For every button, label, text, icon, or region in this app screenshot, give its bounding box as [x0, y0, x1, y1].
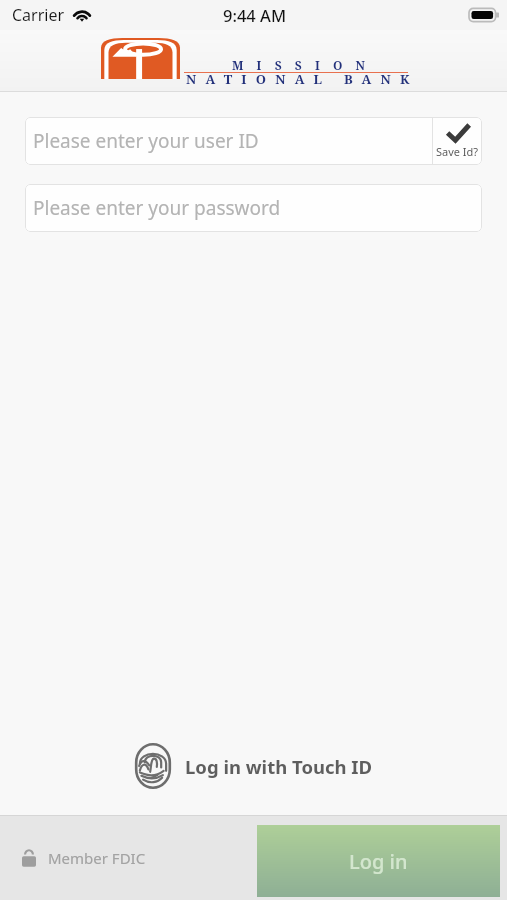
staticText: 9:44 AM	[223, 4, 287, 26]
staticText: Please enter your user ID	[33, 128, 259, 154]
button[interactable]: Save Id	[433, 117, 482, 165]
staticText: Log in with Touch ID	[185, 754, 373, 779]
button[interactable]: Log in with Touch ID	[0, 734, 507, 798]
staticText: Log in	[349, 848, 408, 875]
staticText: MISSION	[232, 57, 379, 73]
staticText: Save Id?	[436, 144, 479, 159]
button[interactable]: Please enter your password	[25, 184, 482, 232]
staticText: NATIONAL BANK	[186, 70, 419, 88]
button[interactable]: Please enter your user ID	[25, 117, 482, 165]
staticText: Please enter your password	[33, 195, 281, 221]
staticText: Member FDIC	[48, 848, 146, 868]
staticText: Carrier	[12, 4, 65, 26]
button[interactable]: Log in	[257, 825, 500, 897]
